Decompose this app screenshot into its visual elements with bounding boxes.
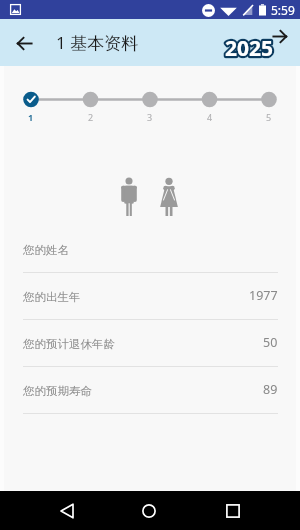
- button[interactable]: Back: [52, 496, 82, 526]
- staticText: 89: [263, 381, 278, 398]
- button[interactable]: 4: [199, 111, 221, 125]
- button[interactable]: 5: [258, 111, 280, 125]
- button[interactable]: 您的预计退休年龄: [0, 320, 300, 367]
- staticText: 您的预期寿命: [23, 384, 92, 398]
- button[interactable]: Next: [268, 24, 292, 48]
- staticText: 5: [266, 111, 272, 123]
- staticText: 2: [88, 111, 94, 123]
- button[interactable]: 2: [80, 111, 102, 125]
- button[interactable]: 3: [139, 111, 161, 125]
- staticText: 1: [28, 111, 34, 123]
- staticText: 2025: [225, 34, 274, 63]
- staticText: 5:59: [271, 2, 295, 18]
- staticText: 1 基本资料: [56, 31, 139, 54]
- staticText: 您的出生年: [23, 290, 81, 304]
- button[interactable]: 1: [20, 111, 42, 125]
- button[interactable]: 您的出生年: [0, 273, 300, 320]
- staticText: 2025: [225, 34, 274, 63]
- staticText: 3: [147, 111, 153, 123]
- button[interactable]: 您的预期寿命: [0, 367, 300, 414]
- staticText: 您的预计退休年龄: [23, 337, 115, 351]
- button[interactable]: Back: [6, 25, 42, 61]
- staticText: 您的姓名: [23, 243, 69, 257]
- button[interactable]: 您的姓名: [0, 226, 300, 273]
- button[interactable]: Recent apps: [218, 496, 248, 526]
- staticText: 50: [263, 334, 278, 351]
- button[interactable]: 2025: [225, 34, 274, 63]
- staticText: 4: [207, 111, 213, 123]
- button[interactable]: Female: [153, 177, 185, 221]
- staticText: 1977: [249, 287, 278, 304]
- button[interactable]: Male: [113, 177, 145, 221]
- button[interactable]: Home: [134, 496, 164, 526]
